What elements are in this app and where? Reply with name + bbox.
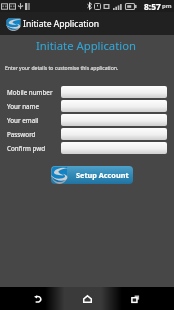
button[interactable]: Back (14, 287, 62, 310)
staticText: Initiate Application (23, 18, 100, 30)
button[interactable] (61, 86, 167, 98)
button[interactable] (61, 100, 167, 112)
button[interactable] (61, 142, 167, 154)
button[interactable] (61, 128, 167, 140)
staticText: Confirm pwd (7, 144, 46, 153)
staticText: Initiate Application (0, 38, 173, 53)
button[interactable]: Home (63, 287, 111, 310)
staticText: 8:57 (144, 1, 161, 12)
staticText: Password (7, 130, 36, 139)
staticText: Your email (7, 116, 39, 125)
button[interactable]: Recent apps (111, 287, 159, 310)
button[interactable] (61, 114, 167, 126)
staticText: Mobile number (7, 88, 53, 97)
staticText: Your name (7, 102, 40, 111)
button[interactable]: Setup Account (51, 166, 133, 184)
staticText: pm (162, 2, 172, 10)
staticText: Enter your details to customise this app… (5, 65, 119, 72)
staticText: Setup Account (76, 170, 129, 180)
